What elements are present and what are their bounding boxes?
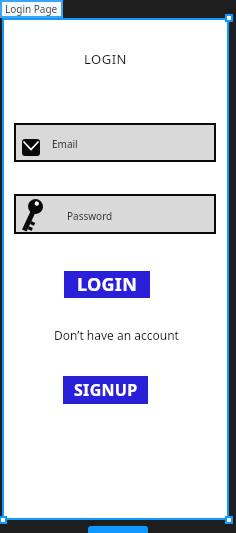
staticText: SIGNUP [74,379,138,401]
button[interactable]: Login Page [0,0,63,18]
button[interactable]: SIGNUP [63,376,148,404]
button[interactable]: LOGIN [64,271,150,298]
button[interactable]: Password [14,194,216,234]
staticText: Don’t have an account [54,327,179,343]
button[interactable]: Email [14,123,216,162]
staticText: LOGIN [84,50,127,68]
staticText: Password [67,209,113,223]
staticText: Login Page [5,2,58,16]
staticText: Email [52,137,78,151]
staticText: LOGIN [77,272,138,297]
